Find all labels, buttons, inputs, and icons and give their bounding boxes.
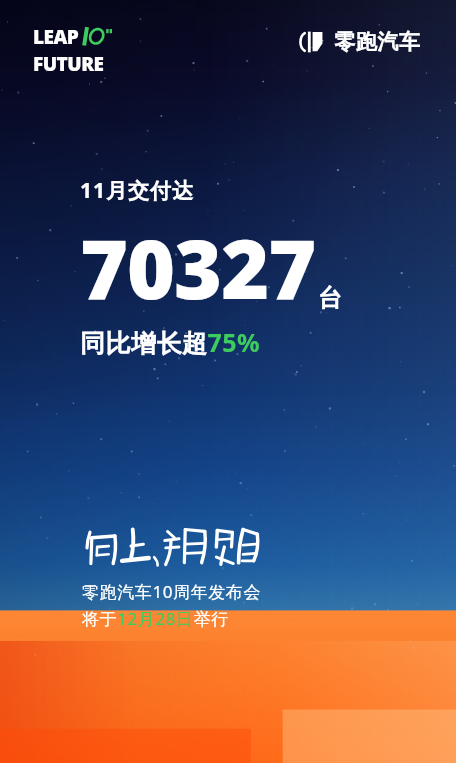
staticText: FUTURE — [33, 51, 104, 77]
staticText: 同比增长超75% — [80, 325, 261, 359]
button[interactable]: LEAP 10th FUTURE — [33, 24, 113, 77]
staticText: 将于12月28日举行 — [82, 607, 229, 630]
staticText: 零跑汽车 — [334, 29, 420, 55]
button[interactable]: 零跑汽车 Leapmotor — [298, 29, 420, 55]
staticText: 11月交付达 — [80, 176, 195, 205]
staticText: 台 — [318, 283, 342, 313]
staticText: 零跑汽车10周年发布会 — [82, 580, 262, 603]
staticText: 70327 — [80, 211, 316, 323]
staticText: LEAP — [33, 24, 79, 50]
